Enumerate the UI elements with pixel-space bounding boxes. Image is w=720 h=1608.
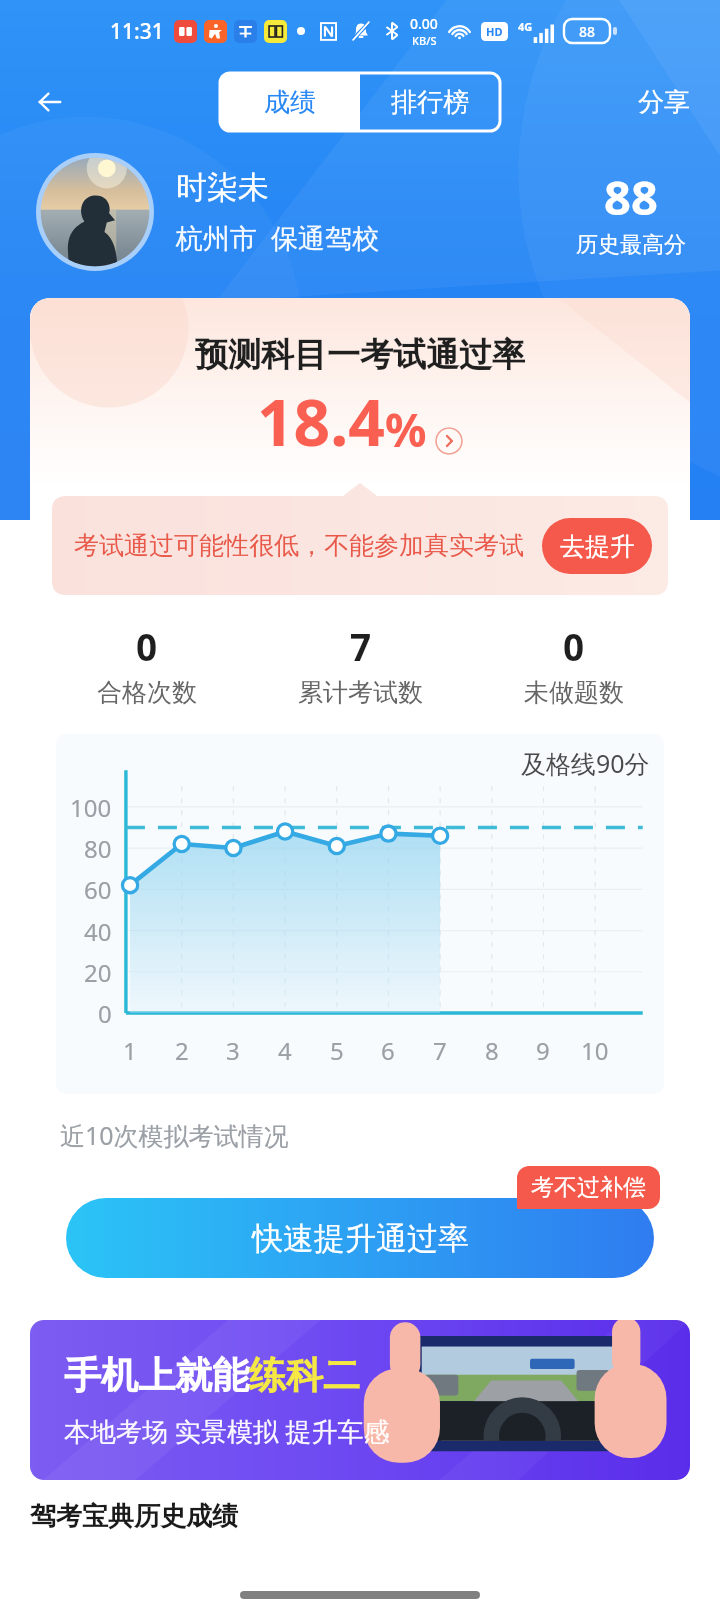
staticText: 8 bbox=[485, 1034, 499, 1067]
button[interactable]: 分享 bbox=[630, 78, 698, 127]
staticText: 快速提升通过率 bbox=[252, 1219, 469, 1258]
staticText: 88 bbox=[579, 22, 596, 41]
staticText: 5 bbox=[330, 1034, 344, 1067]
staticText: KB/S bbox=[412, 33, 437, 48]
staticText: 40 bbox=[84, 915, 112, 948]
staticText: 4 bbox=[278, 1034, 292, 1067]
button[interactable]: 考不过补偿 bbox=[517, 1166, 660, 1209]
staticText: 1 bbox=[123, 1034, 137, 1067]
button[interactable]: 7 bbox=[254, 621, 467, 708]
staticText: 本地考场 实景模拟 提升车感 bbox=[64, 1413, 390, 1449]
button[interactable]: 排行榜 bbox=[360, 73, 500, 131]
staticText: 80 bbox=[84, 832, 112, 865]
button[interactable]: 去提升 bbox=[542, 518, 652, 574]
staticText: 20 bbox=[84, 956, 112, 989]
staticText: 杭州市 保通驾校 bbox=[176, 219, 380, 256]
button[interactable]: 0 bbox=[467, 621, 680, 708]
staticText: 10 bbox=[581, 1034, 609, 1067]
button[interactable]: 成绩 bbox=[220, 73, 360, 131]
staticText: 合格次数 bbox=[97, 677, 197, 708]
staticText: 2 bbox=[175, 1034, 189, 1067]
staticText: 60 bbox=[84, 873, 112, 906]
staticText: 累计考试数 bbox=[298, 677, 423, 708]
staticText: 6 bbox=[381, 1034, 395, 1067]
staticText: 时柒未 bbox=[176, 168, 269, 207]
staticText: 考试通过可能性很低，不能参加真实考试 bbox=[74, 530, 530, 561]
staticText: 3 bbox=[226, 1034, 240, 1067]
staticText: 0 bbox=[136, 621, 158, 671]
staticText: 4G bbox=[518, 19, 533, 34]
button[interactable]: 手机上就能 bbox=[30, 1320, 690, 1480]
staticText: 手机上就能 bbox=[64, 1352, 249, 1399]
staticText: HD bbox=[486, 24, 503, 39]
staticText: 0 bbox=[98, 997, 112, 1030]
staticText: 7 bbox=[433, 1034, 447, 1067]
staticText: 0 bbox=[563, 621, 585, 671]
staticText: 100 bbox=[70, 791, 112, 824]
button[interactable]: 0 bbox=[40, 621, 254, 708]
staticText: % bbox=[385, 398, 427, 461]
staticText: 18.4 bbox=[257, 378, 385, 465]
staticText: 练科二 bbox=[249, 1352, 360, 1399]
staticText: 及格线90分 bbox=[521, 746, 650, 780]
staticText: 分享 bbox=[638, 86, 690, 119]
staticText: 11:31 bbox=[110, 17, 164, 46]
button[interactable]: 查看详情 bbox=[435, 427, 463, 455]
staticText: 预测科目一考试通过率 bbox=[30, 334, 690, 376]
staticText: 考不过补偿 bbox=[531, 1173, 646, 1202]
staticText: 0.00 bbox=[410, 14, 438, 33]
staticText: 9 bbox=[536, 1034, 550, 1067]
staticText: 近10次模拟考试情况 bbox=[60, 1118, 289, 1152]
staticText: 驾考宝典历史成绩 bbox=[30, 1500, 238, 1533]
staticText: 成绩 bbox=[264, 86, 316, 119]
button[interactable]: 返回 bbox=[22, 74, 78, 130]
staticText: 去提升 bbox=[560, 531, 635, 562]
staticText: 未做题数 bbox=[524, 677, 624, 708]
staticText: 排行榜 bbox=[391, 86, 469, 119]
staticText: 历史最高分 bbox=[576, 231, 686, 259]
staticText: 88 bbox=[604, 165, 658, 229]
button[interactable]: 时柒未 bbox=[0, 142, 720, 282]
button[interactable]: 快速提升通过率 bbox=[66, 1198, 654, 1278]
staticText: 7 bbox=[350, 621, 372, 671]
